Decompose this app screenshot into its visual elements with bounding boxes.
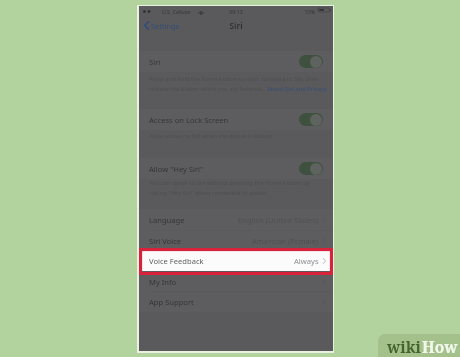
staticText: 09:13 — [139, 8, 333, 15]
button[interactable]: Voice Feedback — [139, 250, 333, 271]
staticText: U.S. Cellular — [162, 8, 192, 15]
button[interactable]: My Info — [139, 271, 333, 292]
staticText: Siri — [149, 57, 161, 67]
button[interactable]: Siri Voice — [139, 230, 333, 251]
staticText: Access on Lock Screen — [149, 115, 229, 125]
staticText: My Info — [149, 277, 177, 287]
other: Toggle Access on Lock Screen — [299, 113, 323, 126]
staticText: App Support — [149, 297, 194, 307]
button[interactable]: Back — [144, 19, 180, 32]
staticText: Voice Feedback — [149, 256, 204, 266]
staticText: Settings — [151, 21, 180, 31]
staticText: wiki — [387, 336, 422, 357]
staticText: How — [422, 336, 458, 357]
button[interactable]: Language — [139, 209, 333, 230]
button[interactable]: Siri — [139, 51, 333, 72]
other: Toggle Siri — [299, 55, 323, 68]
button[interactable]: Allow "Hey Siri" — [139, 158, 333, 179]
staticText: Siri — [139, 20, 333, 31]
button[interactable]: Access on Lock Screen — [139, 109, 333, 130]
staticText: 53% — [305, 8, 316, 15]
staticText: Always — [294, 256, 319, 266]
staticText: Allow "Hey Siri" — [149, 164, 204, 174]
staticText: English (United States) — [238, 215, 319, 225]
other: Toggle Allow "Hey Siri" — [299, 162, 323, 175]
staticText: American (Female) — [252, 236, 319, 246]
other: Back — [144, 21, 149, 30]
button[interactable]: About Siri and Privacy — [267, 85, 327, 93]
button[interactable]: App Support — [139, 291, 333, 312]
staticText: Language — [149, 215, 185, 225]
staticText: Siri Voice — [149, 236, 182, 246]
